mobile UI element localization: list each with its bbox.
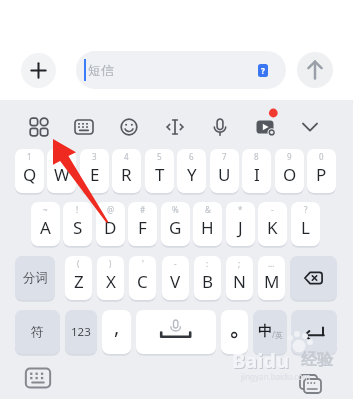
staticText: 9: [287, 151, 292, 162]
button[interactable]: 3: [80, 149, 109, 193]
staticText: (: [77, 258, 80, 269]
staticText: 6: [189, 151, 194, 162]
staticText: N: [233, 270, 246, 293]
staticText: W: [54, 163, 70, 186]
button[interactable]: 中: [253, 310, 287, 354]
staticText: 4: [124, 151, 129, 162]
button[interactable]: ?: [291, 202, 320, 246]
staticText: !: [76, 204, 79, 215]
button[interactable]: [18, 358, 58, 398]
button[interactable]: …: [258, 256, 285, 300]
button[interactable]: 9: [275, 149, 304, 193]
button[interactable]: 1: [15, 149, 44, 193]
button[interactable]: 123: [65, 310, 97, 354]
button[interactable]: [107, 103, 151, 147]
button[interactable]: ): [97, 256, 124, 300]
staticText: G: [169, 216, 182, 239]
staticText: ,: [114, 313, 120, 340]
button[interactable]: 0: [307, 149, 336, 193]
staticText: /英: [272, 329, 283, 340]
button[interactable]: [198, 103, 242, 147]
staticText: ): [109, 258, 112, 269]
button[interactable]: 8: [242, 149, 271, 193]
staticText: …: [268, 258, 275, 269]
staticText: ?: [261, 65, 265, 76]
staticText: 短信: [88, 62, 114, 78]
staticText: U: [218, 163, 231, 186]
button[interactable]: 6: [177, 149, 206, 193]
staticText: 8: [254, 151, 259, 162]
staticText: 经验: [301, 350, 333, 370]
button[interactable]: #: [128, 202, 157, 246]
staticText: 2: [59, 151, 64, 162]
button[interactable]: [136, 310, 216, 354]
staticText: I: [254, 163, 260, 186]
button[interactable]: ,: [102, 310, 131, 354]
button[interactable]: 4: [112, 149, 141, 193]
staticText: -: [174, 258, 177, 269]
button[interactable]: [243, 103, 287, 147]
button[interactable]: ': [129, 256, 156, 300]
staticText: jingyan.baidu.com: [241, 371, 311, 382]
staticText: T: [155, 163, 165, 186]
staticText: ': [142, 258, 144, 269]
button[interactable]: [290, 256, 337, 300]
button[interactable]: 7: [210, 149, 239, 193]
staticText: 5: [157, 151, 162, 162]
staticText: J: [238, 216, 243, 239]
staticText: K: [267, 216, 278, 239]
button[interactable]: ;: [226, 256, 253, 300]
button[interactable]: ~: [31, 202, 60, 246]
staticText: %: [172, 204, 179, 215]
staticText: :: [206, 258, 209, 269]
button[interactable]: [21, 53, 56, 88]
staticText: ~: [43, 204, 48, 215]
button[interactable]: !: [63, 202, 92, 246]
button[interactable]: [221, 310, 248, 354]
staticText: Z: [74, 270, 84, 293]
staticText: X: [106, 270, 116, 293]
staticText: F: [138, 216, 147, 239]
button[interactable]: :: [194, 256, 221, 300]
staticText: Q: [23, 163, 37, 186]
staticText: 0: [319, 151, 324, 162]
staticText: 分词: [23, 270, 48, 286]
button[interactable]: 2: [47, 149, 76, 193]
button[interactable]: [17, 103, 61, 147]
staticText: C: [137, 270, 148, 293]
staticText: O: [283, 163, 297, 186]
staticText: ;: [238, 258, 241, 269]
button[interactable]: -: [162, 256, 189, 300]
staticText: Y: [187, 163, 197, 186]
staticText: B: [202, 270, 214, 293]
staticText: 中: [258, 323, 272, 341]
staticText: D: [104, 216, 117, 239]
button[interactable]: [290, 364, 330, 399]
staticText: L: [301, 216, 310, 239]
button[interactable]: @: [96, 202, 125, 246]
staticText: @: [107, 204, 115, 215]
button[interactable]: 5: [145, 149, 174, 193]
staticText: *: [238, 204, 243, 215]
button[interactable]: 分词: [15, 256, 55, 300]
button[interactable]: %: [161, 202, 190, 246]
button[interactable]: [291, 310, 337, 354]
button[interactable]: [297, 52, 333, 88]
staticText: 7: [222, 151, 227, 162]
button[interactable]: &: [193, 202, 222, 246]
button[interactable]: [153, 103, 197, 147]
staticText: 符: [31, 324, 44, 340]
button[interactable]: *: [226, 202, 255, 246]
staticText: A: [40, 216, 51, 239]
staticText: &: [205, 204, 211, 215]
button[interactable]: [288, 103, 332, 147]
button[interactable]: 短信: [76, 51, 286, 89]
button[interactable]: -: [258, 202, 287, 246]
button[interactable]: (: [65, 256, 92, 300]
staticText: -: [271, 204, 274, 215]
button[interactable]: [62, 103, 106, 147]
button[interactable]: 符: [15, 310, 60, 354]
staticText: 123: [71, 324, 91, 340]
staticText: ?: [304, 204, 308, 215]
staticText: M: [264, 270, 280, 293]
